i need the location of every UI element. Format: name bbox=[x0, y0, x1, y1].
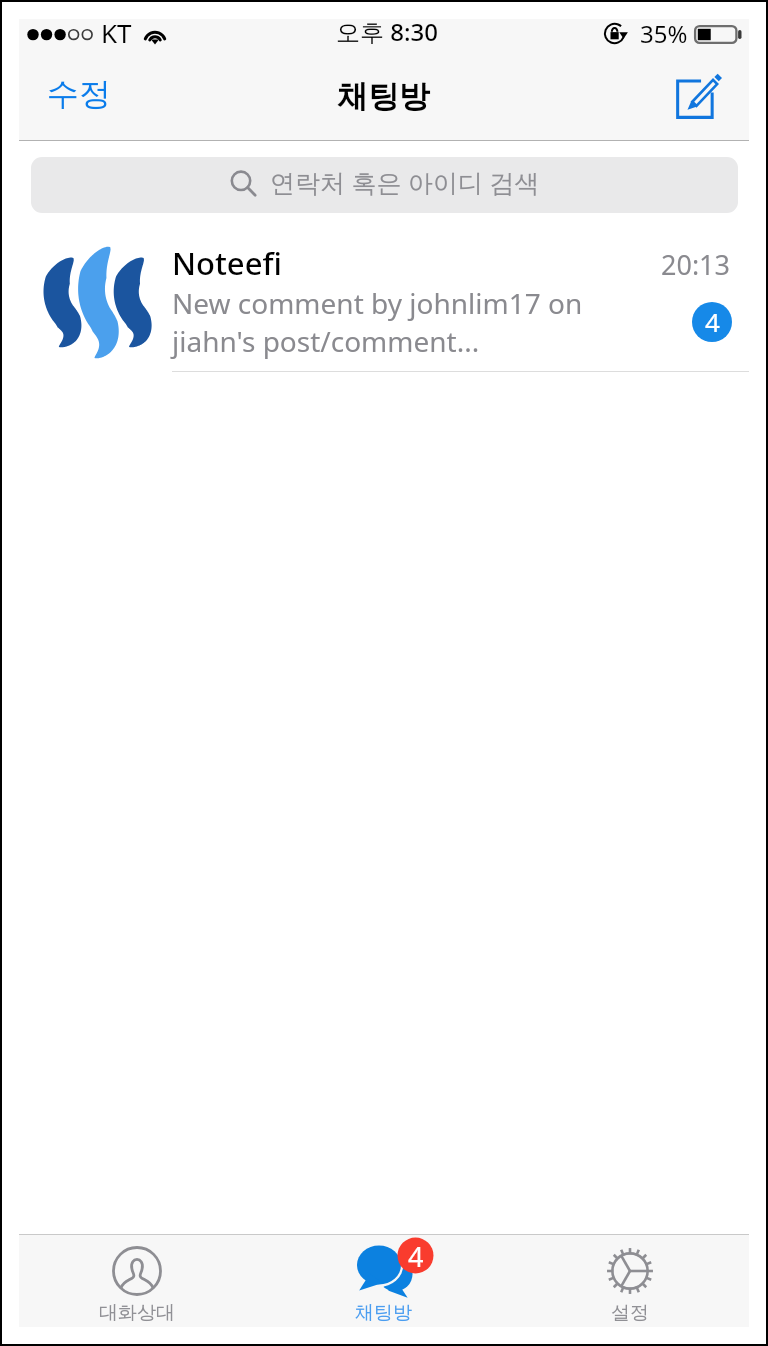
button[interactable]: 수정 bbox=[25, 64, 133, 136]
staticText: 채팅방 bbox=[337, 77, 430, 116]
staticText: 4 bbox=[705, 304, 720, 339]
staticText: 연락처 혹은 아이디 검색 bbox=[270, 165, 540, 199]
staticText: 20:13 bbox=[661, 246, 731, 283]
button[interactable]: 연락처 혹은 아이디 검색 bbox=[31, 157, 738, 213]
staticText: 오후 8:30 bbox=[336, 15, 438, 48]
button[interactable]: 설정 bbox=[507, 1235, 753, 1327]
button[interactable]: Compose new message bbox=[664, 61, 740, 141]
staticText: 채팅방 bbox=[355, 1301, 412, 1325]
staticText: 4 bbox=[408, 1238, 424, 1275]
staticText: Noteefi bbox=[172, 242, 282, 284]
staticText: New comment by johnlim17 on jiahn's post… bbox=[172, 284, 632, 360]
button[interactable]: 대화상대 bbox=[14, 1235, 260, 1327]
staticText: 설정 bbox=[611, 1301, 649, 1325]
staticText: 대화상대 bbox=[99, 1301, 175, 1325]
staticText: KT bbox=[101, 15, 132, 50]
button[interactable]: 4 bbox=[260, 1235, 506, 1327]
staticText: 35% bbox=[640, 17, 688, 50]
button[interactable]: Noteefi bbox=[19, 213, 749, 372]
staticText: 수정 bbox=[47, 74, 111, 114]
